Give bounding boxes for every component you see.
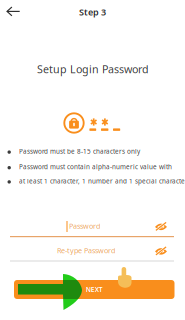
button[interactable]: NEXT — [0, 0, 160, 19]
staticText: NEXT — [86, 285, 103, 294]
staticText: Password must be 8-15 characters only — [19, 147, 140, 156]
button[interactable]: Password — [0, 0, 164, 20]
staticText: Step 3 — [79, 6, 106, 18]
staticText: at least 1 character, 1 number and 1 spe… — [19, 177, 185, 185]
staticText: Setup Login Password — [37, 62, 149, 76]
button[interactable]: Re-type Password — [0, 0, 164, 20]
staticText: Password must contain alpha-numeric valu… — [19, 163, 172, 171]
staticText: Password — [69, 221, 100, 231]
button[interactable]: Back — [0, 0, 28, 24]
staticText: Re-type Password — [57, 245, 115, 255]
